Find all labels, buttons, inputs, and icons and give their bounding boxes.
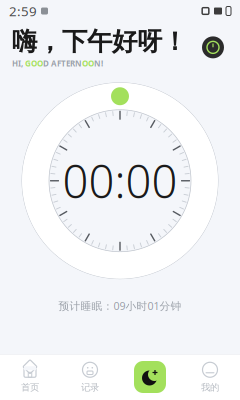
button[interactable]: 记录	[60, 354, 120, 400]
button[interactable]: Sleep	[120, 354, 180, 400]
staticText: G	[25, 58, 31, 69]
staticText: N!	[94, 58, 103, 69]
staticText: 首页	[21, 382, 39, 393]
staticText: 嗨，下午好呀！	[12, 26, 187, 57]
staticText: 2:59	[9, 2, 37, 20]
staticText: HI,	[12, 58, 25, 69]
staticText: OO	[31, 58, 43, 69]
staticText: D AFTERN	[43, 58, 82, 69]
staticText: 预计睡眠：09小时01分钟	[58, 299, 181, 313]
button[interactable]: 我的	[180, 354, 240, 400]
staticText: 记录	[81, 382, 99, 393]
staticText: 我的	[201, 382, 219, 393]
button[interactable]: Clock	[198, 32, 228, 62]
staticText: 00:00	[62, 151, 177, 211]
staticText: OO	[82, 58, 94, 69]
button[interactable]: 首页	[0, 354, 60, 400]
